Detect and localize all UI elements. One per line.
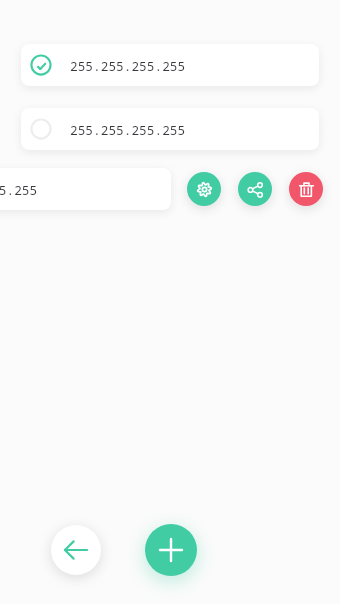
button[interactable]: Back (51, 525, 101, 575)
button[interactable]: 255.255.255.255 (0, 168, 171, 210)
button[interactable]: 255.255.255.255 (21, 44, 319, 86)
button[interactable]: 255.255.255.255 (21, 108, 319, 150)
button[interactable]: Add (145, 524, 197, 576)
staticText: 255.255.255.255 (0, 181, 38, 198)
button[interactable]: Settings (187, 172, 221, 206)
staticText: 255.255.255.255 (70, 57, 186, 74)
button[interactable]: Share (238, 172, 272, 206)
button[interactable]: Delete (289, 172, 323, 206)
staticText: 255.255.255.255 (70, 121, 186, 138)
